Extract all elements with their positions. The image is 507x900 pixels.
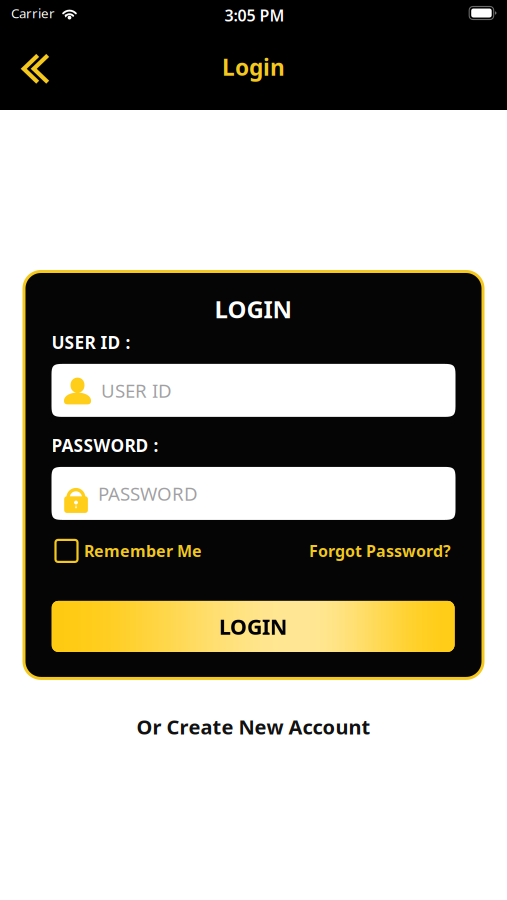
staticText: PASSWORD: [98, 481, 198, 506]
button[interactable]: Back: [0, 43, 64, 99]
staticText: Carrier: [11, 4, 55, 22]
staticText: 3:05 PM: [224, 5, 284, 26]
staticText: Or Create New Account: [136, 713, 370, 740]
staticText: Login: [222, 52, 285, 82]
staticText: USER ID :: [51, 331, 130, 354]
staticText: Remember Me: [84, 540, 202, 561]
staticText: LOGIN: [219, 612, 287, 640]
staticText: LOGIN: [214, 293, 292, 325]
button[interactable]: Or Create New Account: [116, 678, 390, 750]
button[interactable]: Remember Me: [51, 540, 202, 562]
button[interactable]: LOGIN: [51, 601, 454, 652]
button[interactable]: Forgot Password?: [309, 540, 455, 561]
staticText: Forgot Password?: [309, 540, 451, 561]
staticText: PASSWORD :: [51, 434, 158, 457]
staticText: USER ID: [101, 378, 172, 403]
